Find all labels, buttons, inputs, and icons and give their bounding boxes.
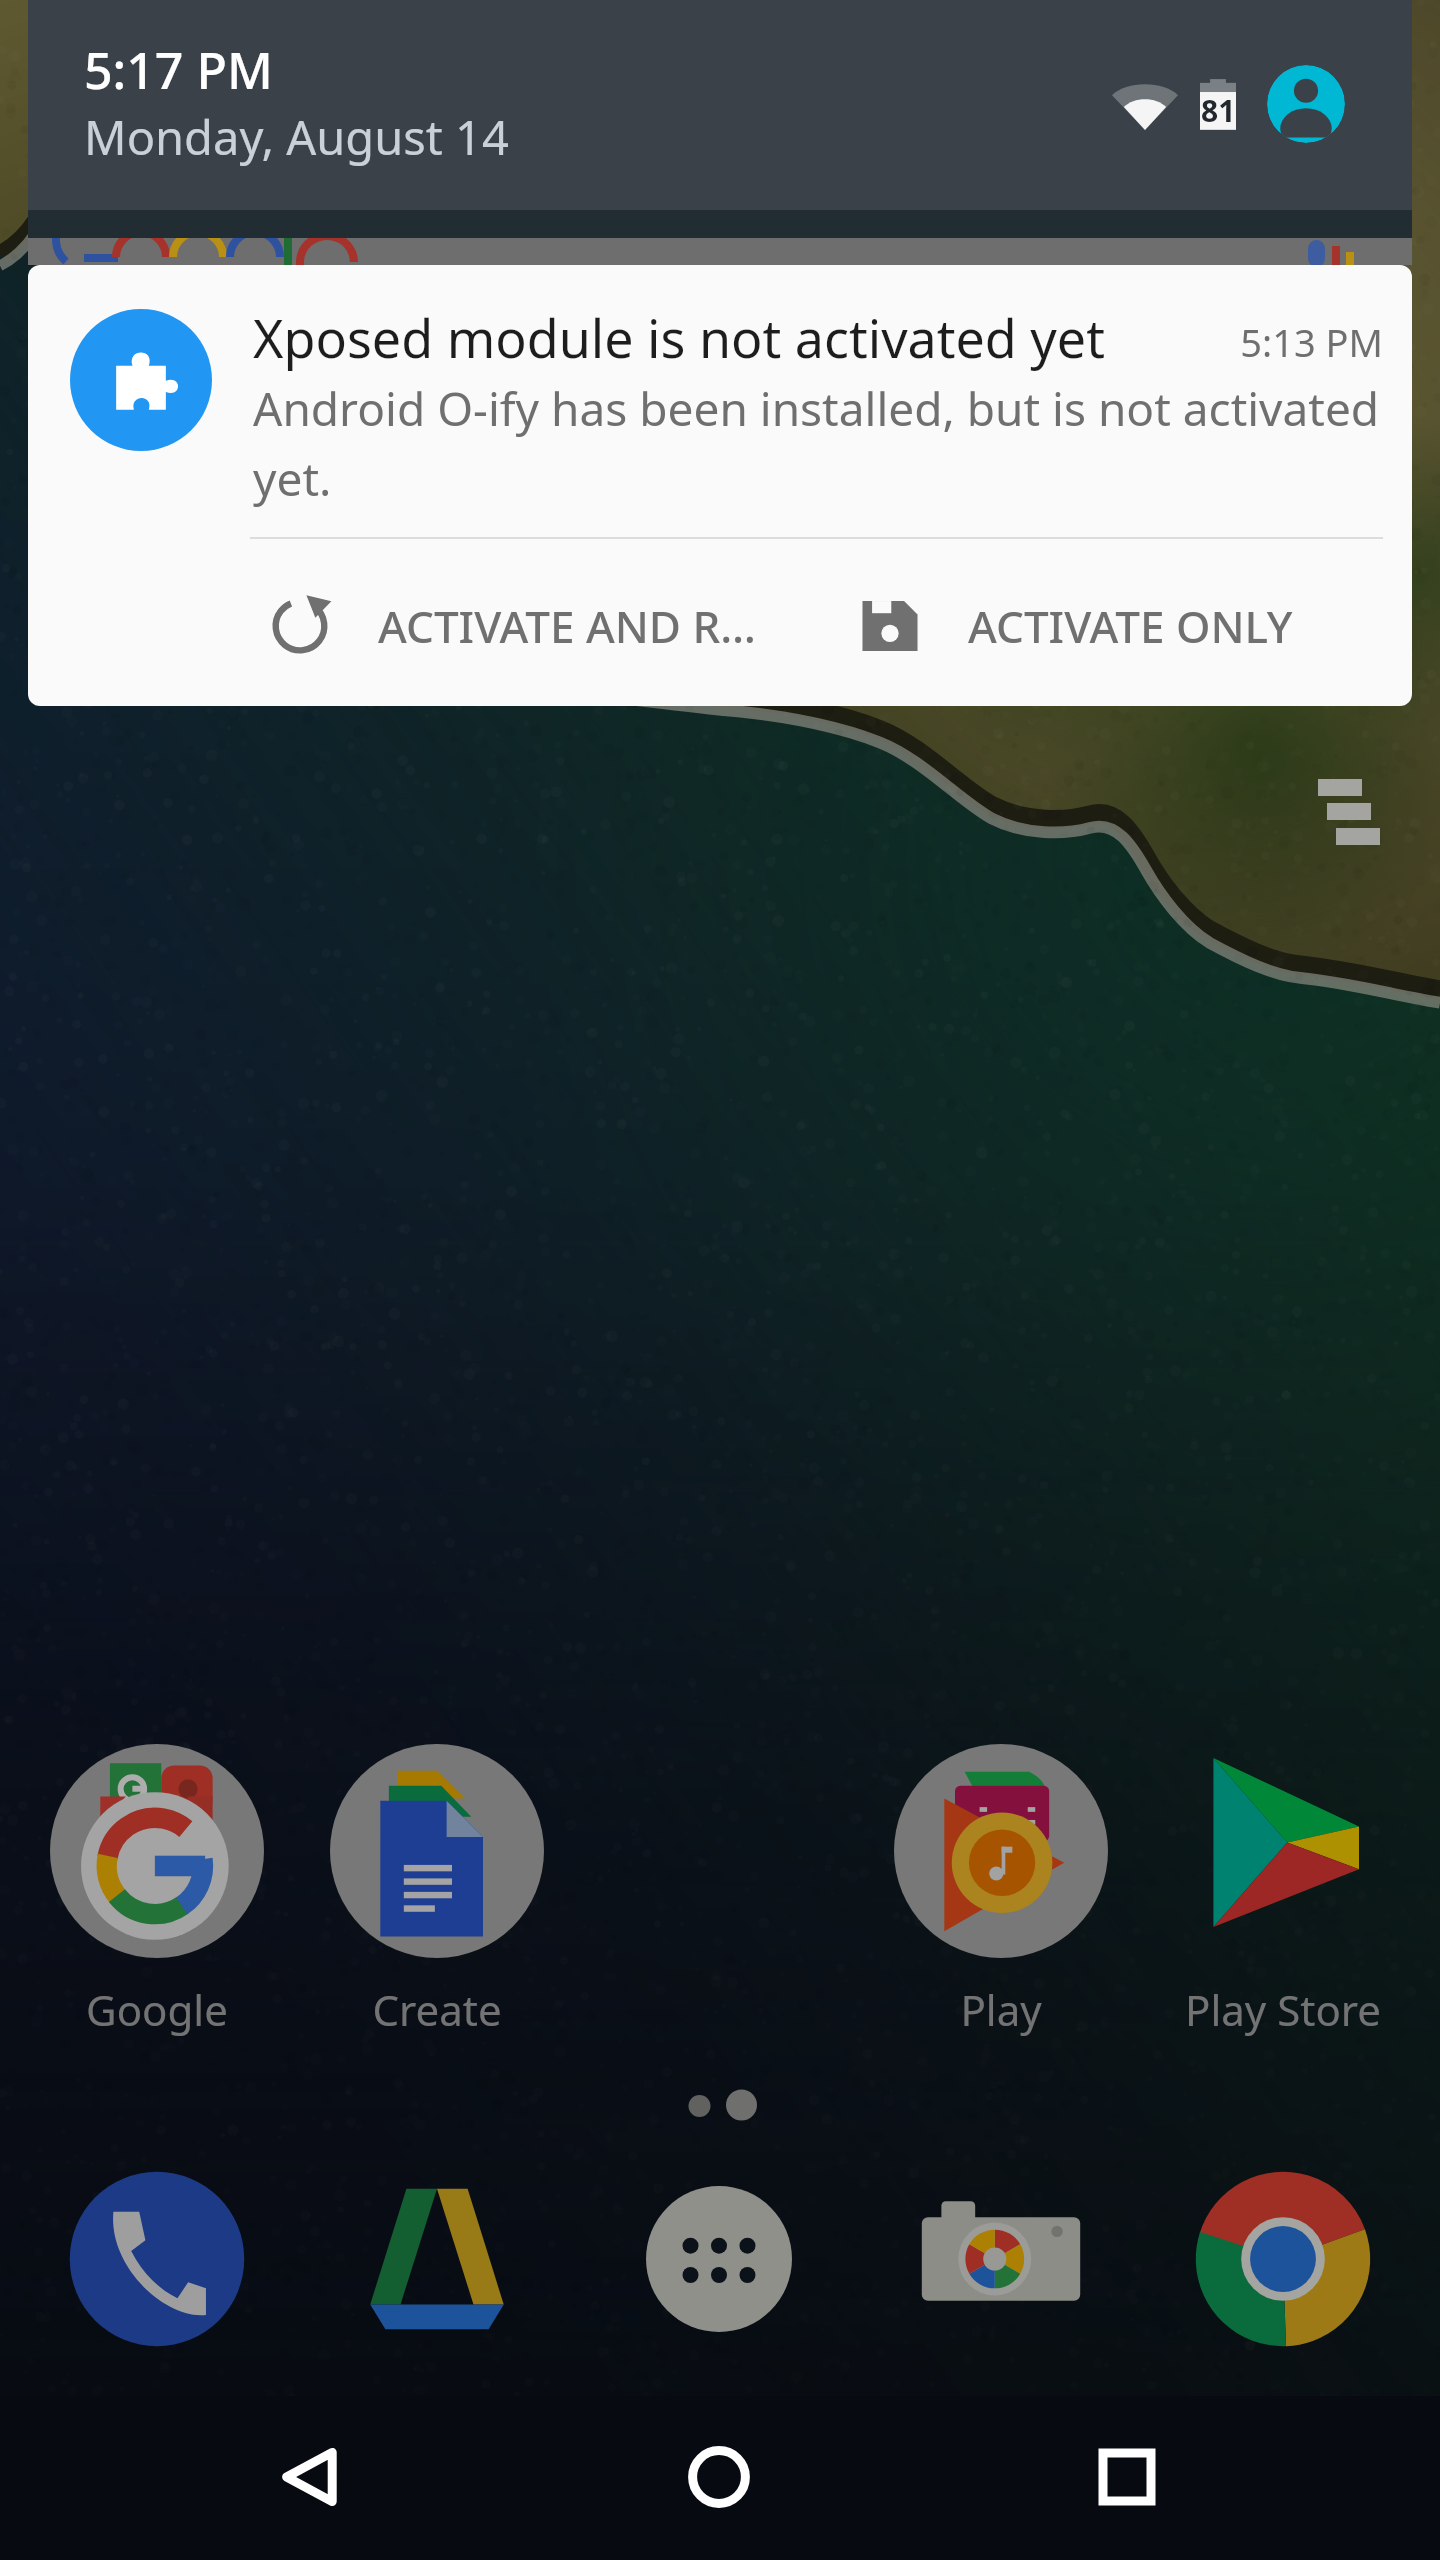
button[interactable]: Play Store xyxy=(1143,1744,1423,2038)
staticText: 5:17 PM xyxy=(84,36,273,104)
button[interactable]: All apps xyxy=(630,2170,808,2348)
button[interactable]: Back xyxy=(230,2418,396,2536)
button[interactable]: Camera xyxy=(912,2170,1090,2348)
staticText: 81 xyxy=(1201,90,1236,131)
button[interactable]: Create xyxy=(297,1744,577,2038)
staticText: Monday, August 14 xyxy=(84,105,509,169)
button[interactable]: Phone xyxy=(68,2170,246,2348)
staticText: Google xyxy=(17,1981,297,2038)
button[interactable]: Play xyxy=(861,1744,1141,2038)
staticText: Create xyxy=(297,1981,577,2038)
button[interactable]: ACTIVATE AND R… xyxy=(268,568,756,684)
button[interactable]: Chrome xyxy=(1194,2170,1372,2348)
staticText: Android O-ify has been installed, but is… xyxy=(253,377,1388,509)
button[interactable]: Xposed module is not activated yet xyxy=(28,265,1412,706)
button[interactable]: Drive xyxy=(348,2170,526,2348)
button[interactable]: ACTIVATE ONLY xyxy=(858,568,1293,684)
button[interactable]: User profile xyxy=(1267,65,1345,143)
button[interactable]: Home xyxy=(636,2418,802,2536)
button[interactable]: Google xyxy=(17,1744,297,2038)
staticText: Play xyxy=(861,1981,1141,2038)
staticText: Xposed module is not activated yet xyxy=(253,302,1105,373)
staticText: ACTIVATE ONLY xyxy=(968,596,1293,656)
button[interactable]: Recent apps xyxy=(1044,2418,1210,2536)
staticText: Play Store xyxy=(1143,1981,1423,2038)
staticText: 5:13 PM xyxy=(1078,316,1383,368)
staticText: ACTIVATE AND R… xyxy=(378,596,756,656)
